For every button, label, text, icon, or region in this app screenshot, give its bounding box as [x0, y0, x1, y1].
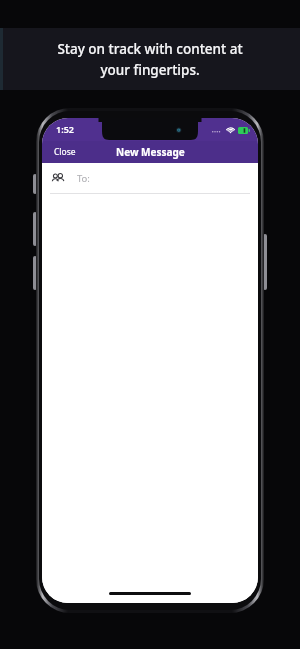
button[interactable]: Close	[42, 142, 88, 162]
staticText: To:	[77, 172, 90, 185]
staticText: New Message	[116, 145, 185, 159]
button[interactable]: Choose recipients	[42, 163, 258, 193]
staticText: Stay on track with content at	[57, 40, 243, 58]
staticText: Close	[54, 146, 76, 158]
staticText: your fingertips.	[100, 61, 200, 79]
staticText: 1:52	[56, 123, 74, 135]
other: Choose recipients	[52, 172, 65, 185]
